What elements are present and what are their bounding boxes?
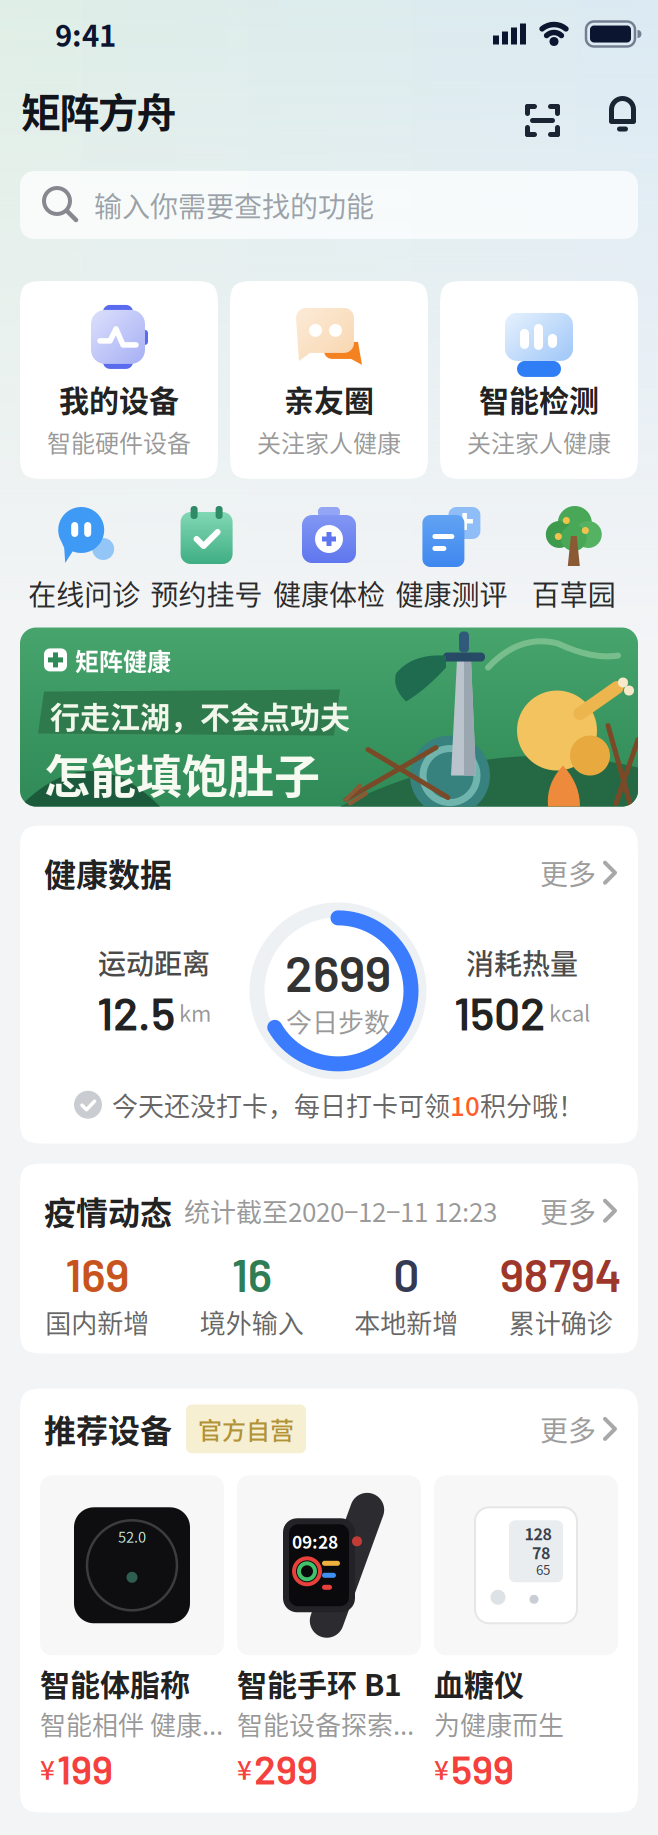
staticText: 在线问诊 (28, 573, 140, 613)
staticText: 0 (393, 1246, 419, 1301)
staticText: 更多 (540, 852, 596, 893)
staticText: 智能手环 B1 (237, 1661, 402, 1705)
staticText: 运动距离 (98, 942, 210, 982)
button[interactable]: 扫一扫 (520, 93, 555, 126)
button[interactable]: 52.0 (40, 1475, 224, 1792)
button[interactable]: 矩阵健康 (20, 627, 638, 806)
button[interactable]: 健康测评 (390, 505, 513, 613)
staticText: 智能设备探索... (237, 1705, 414, 1742)
staticText: 本地新增 (354, 1303, 458, 1341)
staticText: 78 (532, 1541, 550, 1564)
staticText: 更多 (540, 1409, 596, 1449)
staticText: 599 (451, 1744, 514, 1792)
button[interactable]: 更多 (540, 852, 618, 893)
staticText: ¥ (40, 1750, 55, 1787)
button[interactable]: 亲友圈 (230, 281, 428, 479)
staticText: 亲友圈 (284, 377, 374, 420)
staticText: 299 (254, 1744, 318, 1792)
button[interactable]: 输入你需要查找的功能 (20, 171, 638, 239)
staticText: 官方自营 (198, 1411, 294, 1446)
staticText: 矩阵方舟 (21, 81, 176, 139)
button[interactable]: 消息通知 (609, 92, 636, 128)
staticText: 52.0 (118, 1526, 146, 1547)
staticText: 矩阵健康 (75, 642, 171, 677)
staticText: 百草园 (532, 573, 616, 613)
staticText: kcal (549, 996, 590, 1028)
staticText: ¥ (434, 1750, 449, 1787)
staticText: 16 (232, 1246, 272, 1301)
button[interactable]: 在线问诊 (23, 505, 145, 613)
button[interactable]: 预约挂号 (145, 505, 268, 613)
staticText: 2699 (285, 942, 391, 1002)
button[interactable]: 09:28 (237, 1475, 421, 1792)
staticText: 输入你需要查找的功能 (94, 185, 374, 225)
staticText: 行走江湖，不会点功夫 (50, 693, 350, 737)
staticText: 智能硬件设备 (47, 424, 191, 459)
staticText: 12.5 (97, 985, 175, 1040)
staticText: 推荐设备 (44, 1406, 172, 1452)
button[interactable]: 百草园 (513, 505, 635, 613)
staticText: 10 (450, 1086, 480, 1123)
staticText: 血糖仪 (434, 1661, 524, 1705)
staticText: 关注家人健康 (257, 424, 401, 459)
staticText: 境外输入 (200, 1303, 304, 1341)
staticText: 关注家人健康 (467, 424, 611, 459)
staticText: 健康测评 (395, 573, 507, 613)
staticText: 统计截至2020−12−11 12:23 (184, 1192, 497, 1229)
staticText: 疫情动态 (44, 1187, 172, 1234)
staticText: 智能体脂称 (40, 1661, 190, 1705)
staticText: 为健康而生 (434, 1705, 564, 1742)
button[interactable]: 智能检测 (440, 281, 638, 479)
staticText: 消耗热量 (466, 942, 578, 982)
button[interactable]: 我的设备 (20, 281, 218, 479)
staticText: 累计确诊 (509, 1303, 613, 1341)
staticText: 09:28 (292, 1529, 338, 1554)
staticText: 199 (57, 1744, 113, 1792)
staticText: 健康数据 (44, 849, 172, 896)
button[interactable]: 更多 (540, 1190, 618, 1231)
staticText: 积分哦！ (480, 1086, 584, 1123)
button[interactable]: 更多 (540, 1409, 618, 1449)
button[interactable]: 128 (434, 1475, 618, 1792)
staticText: ¥ (237, 1750, 252, 1787)
staticText: 我的设备 (59, 377, 179, 420)
staticText: 智能检测 (479, 377, 599, 420)
staticText: 1502 (454, 985, 545, 1040)
staticText: 9:41 (55, 13, 116, 55)
staticText: 128 (524, 1522, 551, 1545)
button[interactable]: 健康体检 (268, 505, 390, 613)
staticText: 今日步数 (286, 1002, 390, 1040)
staticText: 健康体检 (273, 573, 385, 613)
staticText: 98794 (500, 1246, 622, 1301)
staticText: 怎能填饱肚子 (44, 739, 320, 806)
staticText: 智能相伴 健康... (40, 1705, 223, 1742)
staticText: 国内新增 (45, 1303, 149, 1341)
staticText: 65 (536, 1560, 550, 1579)
staticText: 今天还没打卡，每日打卡可领 (112, 1086, 450, 1123)
staticText: km (179, 996, 211, 1028)
staticText: 预约挂号 (151, 573, 263, 613)
staticText: 更多 (540, 1190, 596, 1231)
staticText: 169 (65, 1246, 129, 1301)
